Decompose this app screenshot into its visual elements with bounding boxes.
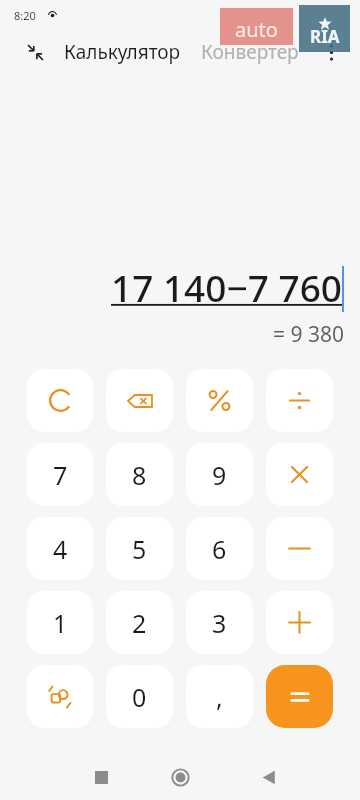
button[interactable]: Collapse	[20, 37, 50, 67]
staticText: 7	[53, 458, 68, 492]
button[interactable]: 2	[106, 591, 173, 654]
button[interactable]: Minus	[266, 517, 333, 580]
staticText: = 9 380	[273, 320, 344, 349]
button[interactable]: ,	[186, 665, 253, 728]
button[interactable]: Divide	[266, 369, 333, 432]
button[interactable]: 1	[27, 591, 93, 654]
button[interactable]: More options	[314, 35, 348, 69]
button[interactable]: Clear	[27, 369, 93, 432]
staticText: 4	[53, 532, 68, 566]
button[interactable]: Конвертер	[199, 33, 301, 71]
staticText: 8	[132, 458, 147, 492]
button[interactable]: Backspace	[106, 369, 173, 432]
button[interactable]: Percent	[186, 369, 253, 432]
button[interactable]: Home	[163, 760, 197, 794]
staticText: auto	[235, 16, 278, 43]
button[interactable]: Калькулятор	[62, 33, 183, 71]
staticText: Калькулятор	[64, 39, 181, 65]
staticText: 17 140−7 760	[111, 262, 342, 312]
staticText: 1	[53, 606, 68, 640]
button[interactable]: Unit shapes	[27, 665, 93, 728]
staticText: ,	[216, 680, 223, 714]
staticText: Конвертер	[201, 39, 299, 65]
staticText: 5	[132, 532, 147, 566]
button[interactable]: 5	[106, 517, 173, 580]
staticText: 2	[132, 606, 147, 640]
button[interactable]: 3	[186, 591, 253, 654]
button[interactable]: Equals	[266, 665, 333, 728]
staticText: 0	[132, 680, 147, 714]
button[interactable]: Back	[254, 762, 284, 792]
button[interactable]: 9	[186, 443, 253, 506]
button[interactable]: Recents	[86, 762, 116, 792]
button[interactable]: 4	[27, 517, 93, 580]
staticText: 6	[212, 532, 227, 566]
staticText: 9	[212, 458, 227, 492]
button[interactable]: 8	[106, 443, 173, 506]
staticText: 8:20	[14, 8, 36, 23]
button[interactable]: Multiply	[266, 443, 333, 506]
button[interactable]: 6	[186, 517, 253, 580]
staticText: RIA	[310, 25, 340, 48]
staticText: 3	[212, 606, 227, 640]
button[interactable]: 7	[27, 443, 93, 506]
button[interactable]: 0	[106, 665, 173, 728]
button[interactable]: Plus	[266, 591, 333, 654]
